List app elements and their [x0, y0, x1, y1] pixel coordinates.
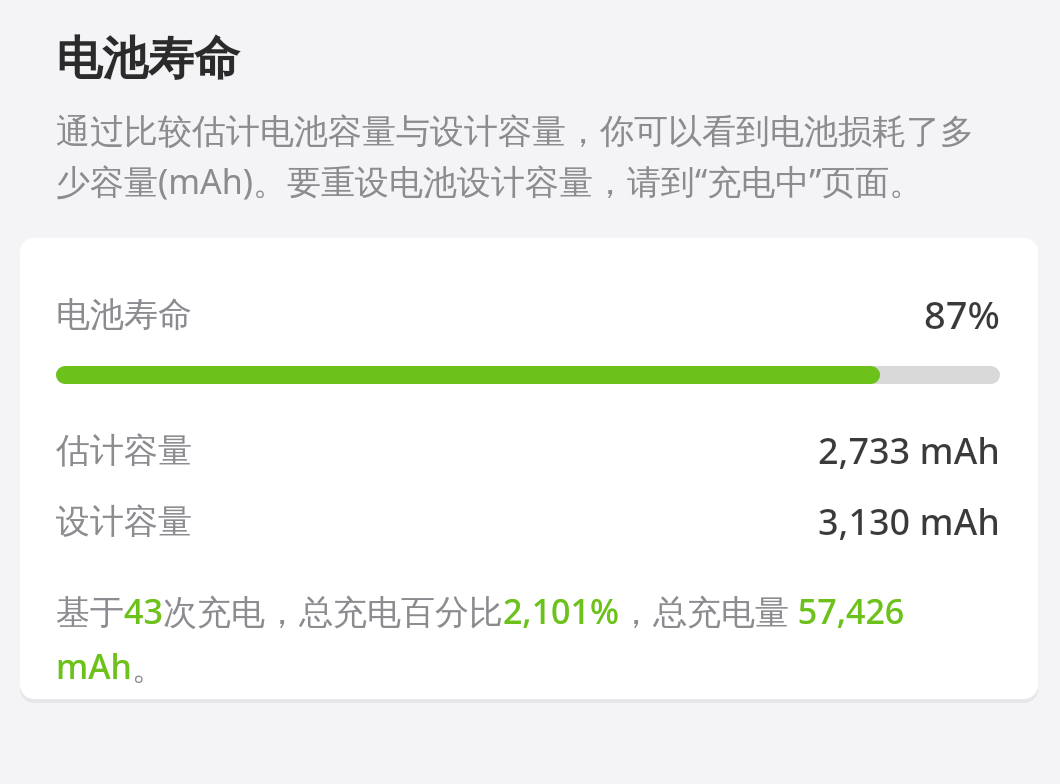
staticText: 2,733 mAh: [818, 426, 1000, 475]
button[interactable]: 估计容量: [56, 426, 1000, 475]
staticText: 基于43次充电，总充电百分比2,101%，总充电量 57,426 mAh。: [56, 588, 1000, 689]
staticText: 设计容量: [56, 500, 192, 543]
button[interactable]: 设计容量: [56, 497, 1000, 546]
staticText: 3,130 mAh: [818, 497, 1000, 546]
staticText: 估计容量: [56, 429, 192, 472]
staticText: 电池寿命: [56, 30, 240, 88]
staticText: 通过比较估计电池容量与设计容量，你可以看到电池损耗了多少容量(mAh)。要重设电…: [56, 110, 1002, 204]
staticText: 电池寿命: [56, 293, 192, 336]
staticText: 87%: [924, 288, 1000, 340]
button[interactable]: 电池寿命: [20, 238, 1038, 699]
